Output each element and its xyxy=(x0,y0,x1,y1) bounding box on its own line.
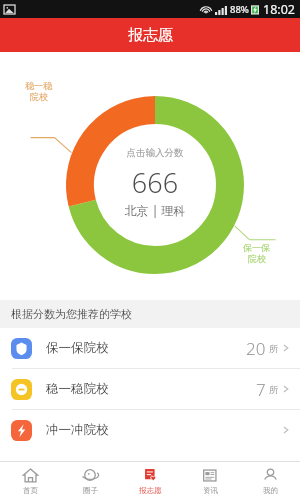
staticText: 所 xyxy=(269,343,278,354)
staticText: 资讯 xyxy=(203,486,218,495)
staticText: 保一保院校 xyxy=(46,340,109,356)
button[interactable]: 圈子 xyxy=(60,462,120,500)
staticText: 我的 xyxy=(263,486,278,495)
staticText: 报志愿 xyxy=(139,486,162,495)
staticText: 点击输入分数 xyxy=(105,147,205,159)
staticText: 稳一稳 xyxy=(25,80,52,91)
button[interactable]: 冲一冲院校 xyxy=(0,410,300,450)
staticText: 稳一稳院校 xyxy=(46,381,109,397)
button[interactable]: 保一保院校 xyxy=(0,328,300,368)
staticText: 首页 xyxy=(23,486,38,495)
staticText: 88% xyxy=(230,3,249,16)
staticText: 所 xyxy=(269,384,278,395)
staticText: 院校 xyxy=(248,253,266,264)
button[interactable]: 报志愿 xyxy=(120,462,180,500)
staticText: 圈子 xyxy=(83,486,98,495)
staticText: 北京 | 理科 xyxy=(105,202,205,218)
staticText: 保一保 xyxy=(243,242,270,253)
button[interactable]: 我的 xyxy=(240,462,300,500)
button[interactable]: 稳一稳院校 xyxy=(0,369,300,409)
button[interactable]: 点击输入分数 xyxy=(105,147,205,218)
staticText: 报志愿 xyxy=(128,26,173,45)
staticText: 院校 xyxy=(30,91,48,102)
button[interactable]: 首页 xyxy=(0,462,60,500)
staticText: 666 xyxy=(105,164,205,201)
staticText: 18:02 xyxy=(263,1,295,18)
staticText: 根据分数为您推荐的学校 xyxy=(11,307,132,321)
staticText: 冲一冲院校 xyxy=(46,422,109,438)
staticText: 20 xyxy=(246,337,266,360)
staticText: 7 xyxy=(256,378,266,401)
button[interactable]: 资讯 xyxy=(180,462,240,500)
